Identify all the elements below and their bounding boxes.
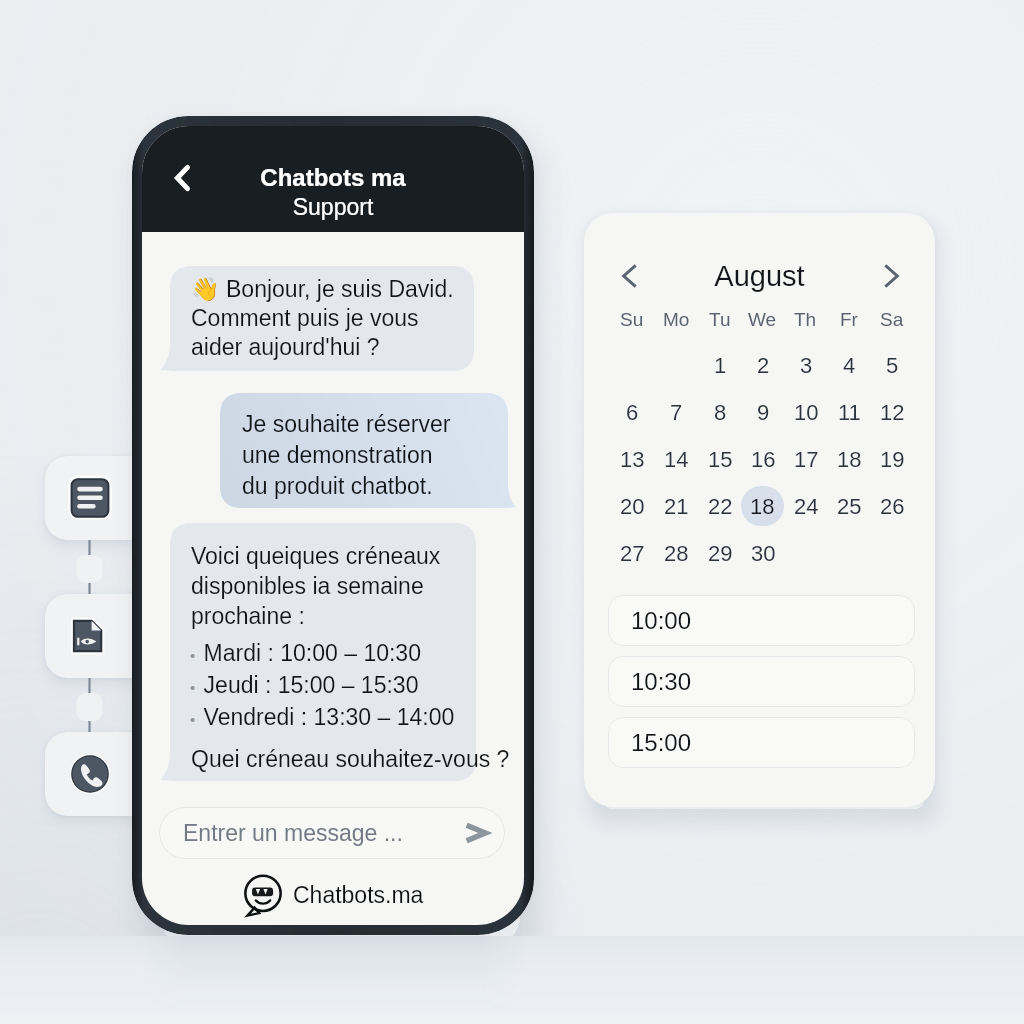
button[interactable]: 20	[613, 487, 651, 525]
staticText: 8	[714, 400, 727, 425]
staticText: 22	[708, 494, 733, 519]
button[interactable]: 30	[744, 534, 782, 572]
button[interactable]: 15:00	[608, 717, 915, 768]
staticText: 3	[800, 353, 813, 378]
staticText: 16	[751, 447, 776, 472]
button[interactable]: 11	[830, 393, 868, 431]
button[interactable]: 29	[701, 534, 739, 572]
staticText: 5	[886, 353, 899, 378]
button[interactable]: 14	[657, 440, 695, 478]
staticText: 10:30	[631, 668, 692, 695]
staticText: Entrer un message ...	[183, 820, 403, 846]
button[interactable]: 28	[657, 534, 695, 572]
staticText: Tu	[709, 309, 731, 330]
staticText: 👋 Bonjour, je suis David. Comment puis j…	[191, 276, 454, 360]
staticText: 17	[794, 447, 819, 472]
staticText: 6	[626, 400, 639, 425]
button[interactable]: 10	[787, 393, 825, 431]
staticText: 10:00	[631, 607, 692, 634]
button[interactable]: 27	[613, 534, 651, 572]
button[interactable]: 10:30	[608, 656, 915, 707]
button[interactable]: 16	[744, 440, 782, 478]
button[interactable]: Send	[460, 817, 492, 849]
staticText: 14	[664, 447, 689, 472]
button[interactable]: 18	[741, 486, 784, 526]
staticText: 13	[620, 447, 645, 472]
staticText: Support	[142, 194, 524, 220]
button[interactable]: 15	[701, 440, 739, 478]
staticText: 26	[880, 494, 905, 519]
staticText: 25	[837, 494, 862, 519]
staticText: Mo	[663, 309, 690, 330]
staticText: 15	[708, 447, 733, 472]
staticText: 18	[750, 494, 775, 519]
button[interactable]: 19	[873, 440, 911, 478]
staticText: 18	[837, 447, 862, 472]
staticText: 1	[714, 353, 727, 378]
button[interactable]: 5	[873, 346, 911, 384]
button[interactable]: Previous month	[609, 254, 653, 298]
button[interactable]	[160, 523, 476, 781]
staticText: 30	[751, 541, 776, 566]
staticText: 9	[757, 400, 770, 425]
button[interactable]: 18	[830, 440, 868, 478]
button[interactable]: 13	[613, 440, 651, 478]
staticText: 12	[880, 400, 905, 425]
staticText: Th	[794, 309, 817, 330]
staticText: 20	[620, 494, 645, 519]
staticText: 7	[670, 400, 683, 425]
button[interactable]: 9	[744, 393, 782, 431]
button[interactable]: Notes	[45, 456, 135, 540]
staticText: 19	[880, 447, 905, 472]
staticText: Chatbots.ma	[293, 882, 424, 908]
button[interactable]: Call	[45, 732, 135, 816]
staticText: Fr	[840, 309, 858, 330]
staticText: Voici queiques créneaux disponibles ia s…	[191, 543, 441, 629]
button[interactable]: 25	[830, 487, 868, 525]
button[interactable]: Document	[45, 594, 135, 678]
button[interactable]	[160, 266, 474, 371]
staticText: Je souhaite réserver une demonstration d…	[242, 411, 451, 499]
staticText: 10	[794, 400, 819, 425]
button[interactable]: 12	[873, 393, 911, 431]
staticText: 24	[794, 494, 819, 519]
button[interactable]: 1	[701, 346, 739, 384]
button[interactable]: Next month	[868, 254, 912, 298]
staticText: We	[748, 309, 777, 330]
button[interactable]: 3	[787, 346, 825, 384]
staticText: Sa	[880, 309, 904, 330]
staticText: 27	[620, 541, 645, 566]
button[interactable]: 2	[744, 346, 782, 384]
button[interactable]: 24	[787, 487, 825, 525]
button[interactable]: 26	[873, 487, 911, 525]
button[interactable]: 7	[657, 393, 695, 431]
button[interactable]: 8	[701, 393, 739, 431]
button[interactable]: 17	[787, 440, 825, 478]
staticText: August	[584, 260, 935, 292]
staticText: 4	[843, 353, 856, 378]
staticText: • Mardi : 10:00 – 10:30 • Jeudi : 15:00 …	[190, 640, 455, 730]
staticText: 29	[708, 541, 733, 566]
button[interactable]: Back	[165, 160, 201, 196]
staticText: 15:00	[631, 729, 692, 756]
button[interactable]: Entrer un message ...	[159, 807, 505, 859]
staticText: Chatbots ma	[142, 164, 524, 191]
staticText: Quei créneau souhaitez-vous ?	[191, 746, 510, 772]
button[interactable]: 10:00	[608, 595, 915, 646]
staticText: 11	[838, 400, 861, 425]
staticText: 2	[757, 353, 770, 378]
button[interactable]: 4	[830, 346, 868, 384]
staticText: 21	[664, 494, 689, 519]
staticText: 28	[664, 541, 689, 566]
button[interactable]: 21	[657, 487, 695, 525]
button[interactable]: 22	[701, 487, 739, 525]
button[interactable]: 6	[613, 393, 651, 431]
staticText: Su	[620, 309, 644, 330]
button[interactable]	[220, 393, 518, 508]
